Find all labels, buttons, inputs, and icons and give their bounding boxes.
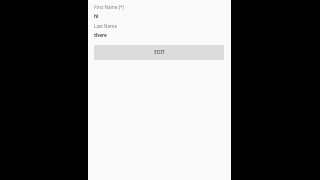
staticText: there xyxy=(94,32,107,39)
staticText: EDIT xyxy=(154,49,165,56)
button[interactable]: EDIT xyxy=(94,45,224,60)
staticText: Last Name xyxy=(94,23,117,29)
staticText: First Name (*) xyxy=(94,4,124,10)
staticText: hi xyxy=(94,13,99,20)
